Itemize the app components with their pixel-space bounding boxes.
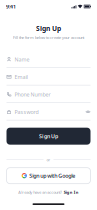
button[interactable]: Email xyxy=(6,70,90,86)
staticText: Phone Number xyxy=(14,91,50,98)
staticText: Fill the form below to create your accou… xyxy=(13,35,84,40)
staticText: Name xyxy=(14,56,29,63)
button[interactable]: Sign up with Google xyxy=(6,168,90,184)
staticText: Sign up with Google xyxy=(29,172,75,179)
staticText: Password xyxy=(14,108,38,115)
staticText: or xyxy=(46,157,50,162)
staticText: Already have an account? xyxy=(18,190,62,195)
button[interactable]: Password xyxy=(6,105,90,121)
staticText: Email xyxy=(14,73,27,80)
staticText: Sign Up xyxy=(36,24,61,33)
button[interactable]: Phone Number xyxy=(6,87,90,103)
staticText: Sign In xyxy=(64,190,79,195)
button[interactable]: Sign Up xyxy=(6,128,90,145)
button[interactable]: Name xyxy=(6,52,90,68)
staticText: Sign Up xyxy=(39,133,58,140)
button[interactable]: Already have an account? xyxy=(18,189,79,195)
staticText: 9:41 xyxy=(6,3,16,10)
